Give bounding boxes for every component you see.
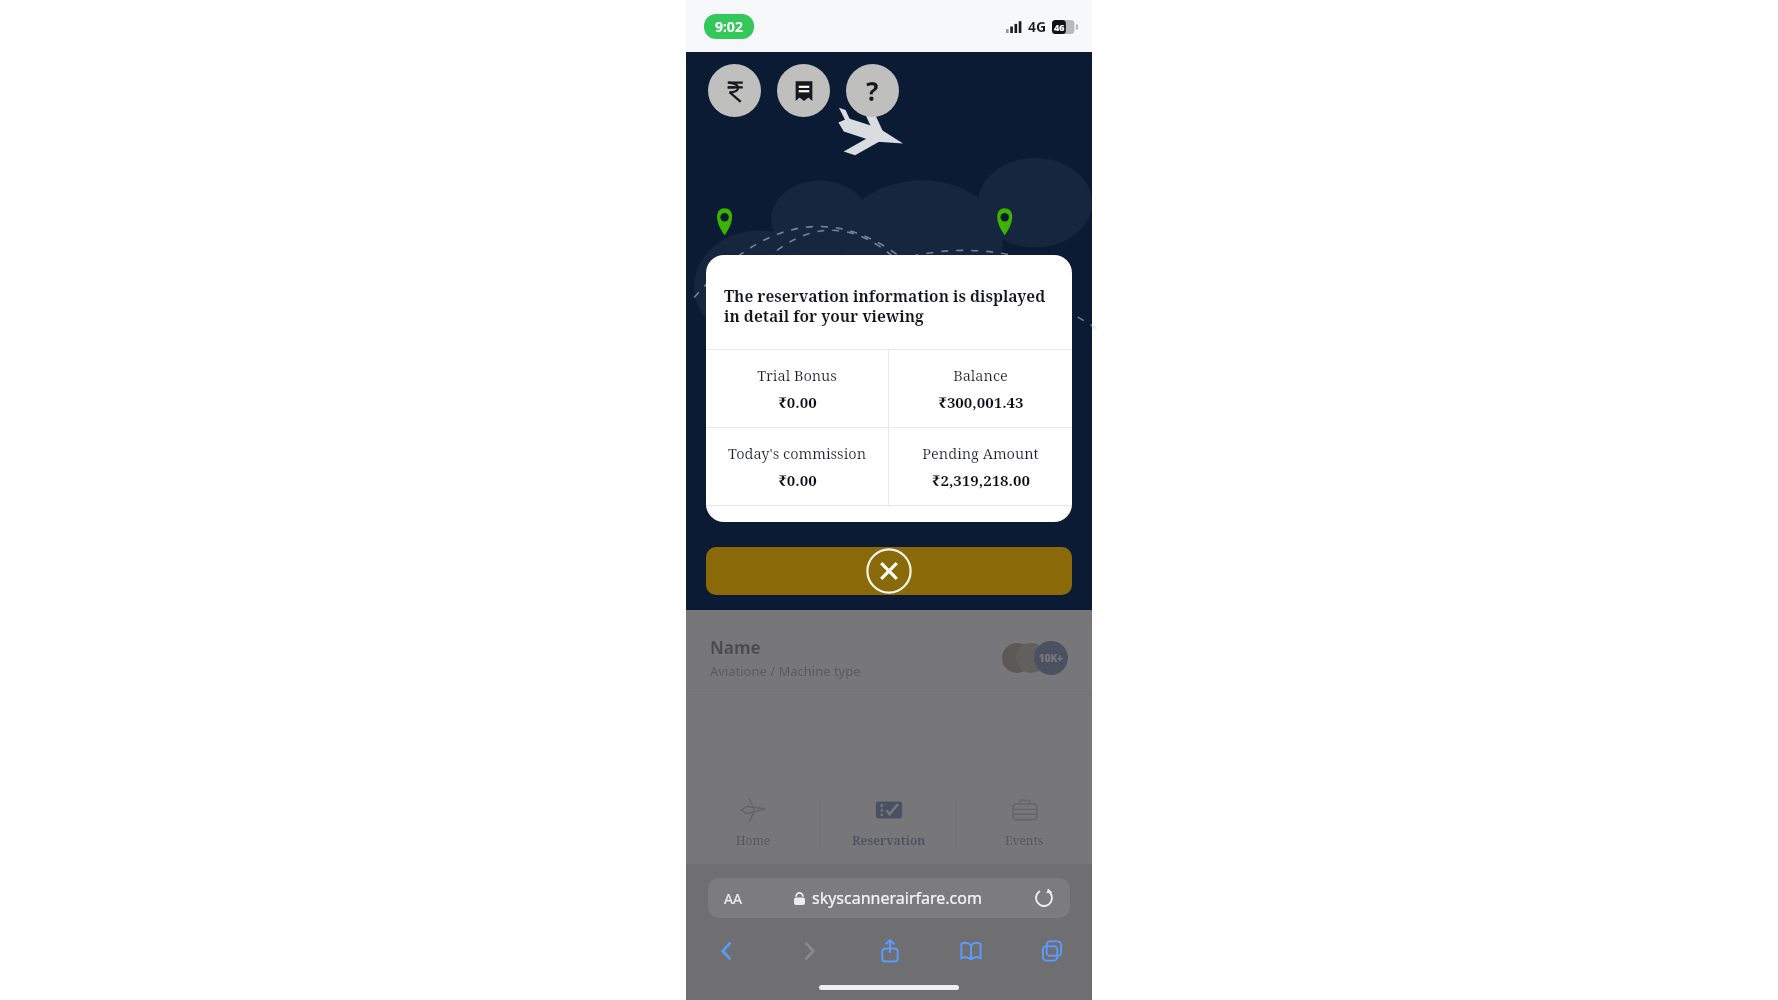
- staticText: Aviatione / Machine type: [710, 662, 861, 680]
- button[interactable]: Share: [849, 928, 930, 974]
- button[interactable]: Forward: [768, 928, 849, 974]
- button[interactable]: Back: [686, 928, 768, 974]
- staticText: ₹300,001.43: [938, 392, 1024, 412]
- staticText: The reservation information is displayed…: [724, 285, 1054, 327]
- button[interactable]: AA: [708, 878, 1070, 918]
- staticText: Today's commission: [728, 443, 866, 463]
- staticText: 46: [1054, 21, 1065, 33]
- button[interactable]: Currency: [708, 64, 761, 117]
- button[interactable]: Pending Amount: [889, 428, 1072, 505]
- staticText: Home: [736, 832, 771, 848]
- staticText: ₹0.00: [778, 392, 817, 412]
- staticText: Balance: [953, 365, 1008, 385]
- staticText: 9:02: [715, 17, 743, 36]
- button[interactable]: Events: [957, 778, 1092, 864]
- staticText: Trial Bonus: [757, 365, 837, 385]
- button[interactable]: Today's commission: [706, 428, 888, 505]
- button[interactable]: Reload: [1034, 888, 1054, 908]
- button[interactable]: Reservation: [821, 778, 956, 864]
- staticText: Reservation: [852, 832, 926, 848]
- button[interactable]: Bookmarks: [930, 928, 1011, 974]
- staticText: Name: [710, 636, 761, 659]
- button[interactable]: Help: [846, 64, 899, 117]
- staticText: ₹2,319,218.00: [932, 470, 1030, 490]
- staticText: Pending Amount: [922, 443, 1039, 463]
- button[interactable]: Balance: [889, 350, 1072, 427]
- button[interactable]: Tabs: [1011, 928, 1092, 974]
- staticText: skyscannerairfare.com: [812, 887, 982, 909]
- button[interactable]: Orders: [777, 64, 830, 117]
- staticText: 4G: [1028, 17, 1047, 36]
- staticText: Events: [1005, 832, 1044, 848]
- staticText: AA: [724, 889, 742, 908]
- staticText: 10K+: [1039, 651, 1063, 665]
- staticText: ₹0.00: [778, 470, 817, 490]
- button[interactable]: Close: [866, 548, 912, 594]
- staticText: ?: [866, 73, 879, 108]
- button[interactable]: Trial Bonus: [706, 350, 888, 427]
